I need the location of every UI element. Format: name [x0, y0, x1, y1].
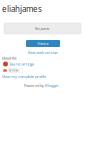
button[interactable]: laurie ortega [3, 61, 43, 67]
button[interactable]: Follower count [19, 68, 23, 73]
staticText: Blogger [45, 83, 59, 88]
button[interactable]: Blogger [45, 83, 59, 88]
button[interactable]: View web version [20, 50, 65, 55]
button[interactable]: Follow [8, 68, 18, 73]
staticText: No posts. [34, 26, 50, 31]
staticText: about me [2, 57, 17, 60]
staticText: . [60, 83, 61, 88]
button[interactable]: Home [26, 40, 60, 47]
staticText: Follow [9, 69, 18, 72]
button[interactable]: View my complete profile [2, 74, 52, 79]
staticText: Powered by [24, 83, 44, 88]
staticText: View my complete profile [2, 74, 46, 79]
staticText: View web version [27, 50, 57, 55]
staticText: laurie ortega [9, 61, 33, 67]
staticText: eliahjames [2, 4, 42, 14]
staticText: Home [37, 41, 48, 46]
